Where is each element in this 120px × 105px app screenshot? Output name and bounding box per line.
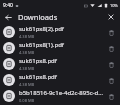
button[interactable]: suk61px8(1).pdf <box>0 40 120 56</box>
button[interactable]: b5b18516-9c1e-4d2c-895c-d45896… <box>0 88 120 104</box>
staticText: 4.38 MB <box>19 66 35 71</box>
button[interactable]: suk61px8(2).pdf <box>0 24 120 40</box>
button[interactable]: Delete <box>106 43 117 54</box>
staticText: 4.38 MB <box>19 82 35 87</box>
button[interactable]: suk61px8.pdf <box>0 72 120 88</box>
button[interactable]: Delete <box>106 59 117 70</box>
staticText: 0.08 MB <box>19 98 35 103</box>
button[interactable]: Delete <box>106 27 117 38</box>
staticText: suk61px8(1).pdf <box>19 41 64 49</box>
staticText: b5b18516-9c1e-4d2c-895c-d45896… <box>19 89 104 97</box>
button[interactable]: Delete <box>106 75 117 86</box>
button[interactable]: Close <box>105 11 117 23</box>
staticText: suk61px8.pdf <box>19 73 57 81</box>
staticText: 4.38 MB <box>19 50 35 55</box>
button[interactable]: Back <box>2 11 14 23</box>
staticText: Downloads <box>18 12 105 22</box>
button[interactable]: suk61px8.pdf <box>0 56 120 72</box>
staticText: suk61px8(2).pdf <box>19 25 64 33</box>
staticText: 9:40 <box>3 2 13 9</box>
staticText: 10% <box>110 3 118 8</box>
button[interactable]: Delete <box>106 91 117 102</box>
staticText: 4.38 MB <box>19 34 35 39</box>
staticText: suk61px8.pdf <box>19 57 57 65</box>
